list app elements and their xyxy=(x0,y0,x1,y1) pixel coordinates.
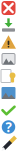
button[interactable]: Document key xyxy=(0,67,17,84)
button[interactable]: Save xyxy=(0,16,17,33)
button[interactable]: Photo xyxy=(0,84,17,101)
button[interactable]: Done xyxy=(0,101,17,118)
staticText: ? xyxy=(5,118,11,136)
button[interactable]: Delete xyxy=(0,0,17,16)
button[interactable]: Edit xyxy=(0,135,17,152)
button[interactable]: Image unavailable xyxy=(0,50,17,67)
button[interactable]: Warning xyxy=(0,33,17,50)
button[interactable]: Help xyxy=(0,118,17,135)
